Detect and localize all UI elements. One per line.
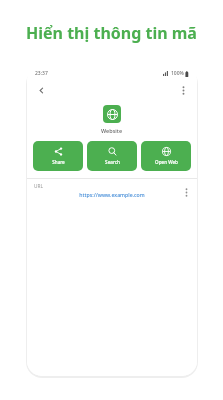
staticText: URL	[34, 183, 44, 190]
button[interactable]: URL options	[180, 186, 192, 198]
button[interactable]: More options	[176, 83, 190, 97]
button[interactable]: Open Web	[141, 141, 191, 171]
staticText: 100%	[171, 70, 184, 77]
staticText: 23:37	[35, 70, 48, 77]
button[interactable]: URL	[27, 179, 197, 205]
button[interactable]: Back	[34, 83, 48, 97]
staticText: https://www.example.com	[79, 191, 145, 198]
button[interactable]: Search	[87, 141, 137, 171]
button[interactable]: Website icon	[103, 105, 121, 123]
staticText: Open Web	[155, 159, 178, 165]
staticText: Share	[52, 159, 65, 165]
button[interactable]: Share	[33, 141, 83, 171]
staticText: Website	[101, 127, 123, 134]
staticText: Search	[105, 159, 120, 165]
staticText: Hiển thị thông tin mã	[26, 22, 197, 44]
